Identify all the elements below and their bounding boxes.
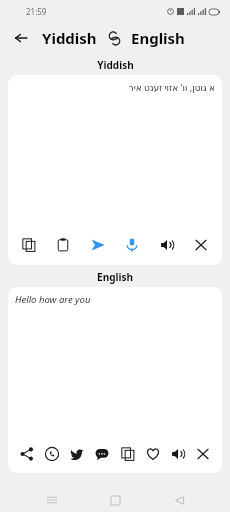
- staticText: 21:59: [26, 6, 47, 17]
- button[interactable]: Favorite: [142, 443, 164, 465]
- button[interactable]: Close: [192, 443, 214, 465]
- button[interactable]: א גוטן, וו' אזוי זענט איר: [128, 81, 215, 93]
- button[interactable]: SMS: [91, 443, 113, 465]
- button[interactable]: Hello how are you: [15, 293, 91, 306]
- button[interactable]: Back: [8, 25, 34, 51]
- button[interactable]: English: [131, 28, 185, 48]
- button[interactable]: Twitter: [66, 443, 88, 465]
- button[interactable]: Clear: [190, 234, 212, 256]
- button[interactable]: Translate: [87, 234, 109, 256]
- button[interactable]: Copy: [18, 234, 40, 256]
- button[interactable]: Paste: [52, 234, 74, 256]
- button[interactable]: Recents: [40, 488, 64, 512]
- button[interactable]: Yiddish: [42, 28, 97, 48]
- button[interactable]: Swap languages: [104, 28, 124, 48]
- button[interactable]: Copy: [117, 443, 139, 465]
- button[interactable]: Share: [16, 443, 38, 465]
- button[interactable]: Home: [103, 488, 127, 512]
- button[interactable]: Voice input: [121, 234, 143, 256]
- button[interactable]: Speak: [167, 443, 189, 465]
- button[interactable]: WhatsApp: [41, 443, 63, 465]
- staticText: English: [97, 270, 133, 284]
- staticText: Yiddish: [97, 58, 134, 72]
- button[interactable]: Back: [167, 488, 191, 512]
- button[interactable]: Speak: [156, 234, 178, 256]
